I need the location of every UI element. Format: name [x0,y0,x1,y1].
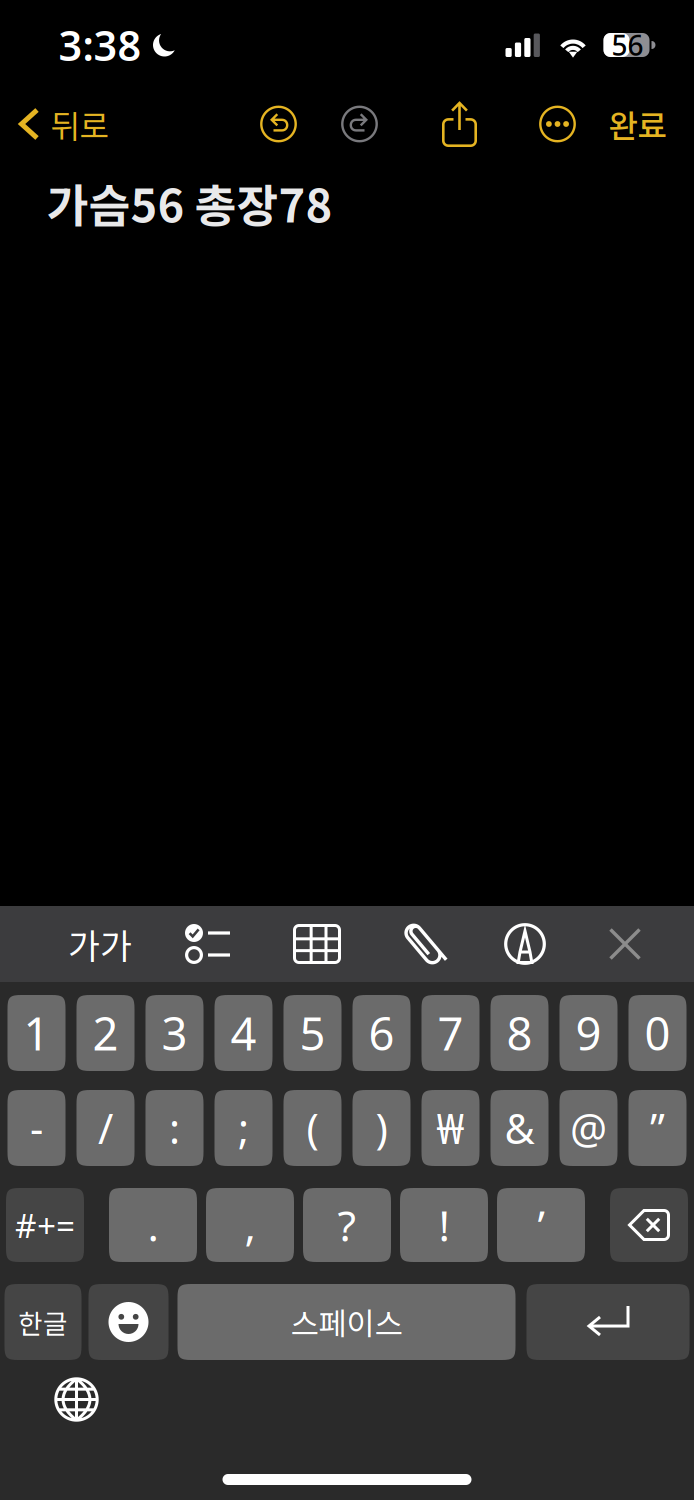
staticText: 6 [368,1003,394,1063]
button[interactable]: : [145,1090,203,1166]
button[interactable]: ₩ [421,1090,479,1166]
button[interactable]: Share [428,90,490,158]
button[interactable]: Undo [247,90,309,158]
button[interactable]: Next keyboard [45,1368,108,1431]
staticText: ’ [537,1197,544,1253]
button[interactable]: 한글 [4,1284,81,1360]
button[interactable]: 8 [490,995,548,1071]
button[interactable]: Emoji [88,1284,168,1360]
button[interactable]: Checklist [153,906,263,982]
button[interactable]: 7 [421,995,479,1071]
button[interactable]: 6 [352,995,410,1071]
button[interactable]: ? [303,1188,391,1262]
staticText: 완료 [608,101,666,147]
button[interactable]: #+= [6,1188,84,1262]
staticText: & [504,1101,534,1155]
button[interactable]: 1 [7,995,65,1071]
button[interactable]: Return [526,1284,689,1360]
staticText: 가가 [68,919,132,969]
button[interactable]: - [7,1090,65,1166]
staticText: : [169,1101,180,1155]
button[interactable]: 9 [559,995,617,1071]
button[interactable]: 0 [628,995,686,1071]
button[interactable]: Redo [328,90,390,158]
staticText: 가슴56 총장78 [46,170,332,236]
button[interactable]: @ [559,1090,617,1166]
button[interactable]: More options [526,90,588,158]
staticText: 한글 [18,1303,68,1341]
button[interactable]: / [76,1090,134,1166]
button[interactable]: 스페이스 [177,1284,515,1360]
button[interactable]: ; [214,1090,272,1166]
button[interactable]: Markup [475,906,575,982]
staticText: ; [238,1101,249,1155]
staticText: 7 [437,1003,463,1063]
staticText: ! [438,1197,449,1253]
button[interactable]: ” [628,1090,686,1166]
staticText: 뒤로 [50,101,108,147]
button[interactable]: , [206,1188,294,1262]
staticText: 2 [92,1003,118,1063]
button[interactable]: 2 [76,995,134,1071]
staticText: 3:38 [58,18,141,72]
staticText: 4 [230,1003,256,1063]
staticText: - [30,1101,43,1155]
staticText: ” [650,1101,665,1155]
button[interactable]: & [490,1090,548,1166]
button[interactable]: Hide keyboard [575,906,675,982]
staticText: 56 [611,26,643,64]
button[interactable]: 뒤로 [0,90,120,158]
staticText: ? [337,1197,356,1253]
button[interactable]: ( [283,1090,341,1166]
staticText: 9 [575,1003,601,1063]
button[interactable]: ! [400,1188,488,1262]
staticText: ( [306,1101,318,1155]
staticText: 0 [644,1003,670,1063]
staticText: . [147,1197,158,1253]
button[interactable]: 완료 [596,90,694,158]
staticText: 1 [23,1003,49,1063]
button[interactable]: 4 [214,995,272,1071]
button[interactable]: Table [263,906,371,982]
staticText: ₩ [436,1101,464,1155]
button[interactable]: ) [352,1090,410,1166]
staticText: 스페이스 [290,1300,402,1344]
staticText: #+= [15,1203,75,1247]
button[interactable]: ’ [497,1188,585,1262]
staticText: 8 [506,1003,532,1063]
button[interactable]: . [109,1188,197,1262]
staticText: / [98,1101,113,1155]
button[interactable]: 5 [283,995,341,1071]
staticText: , [244,1197,255,1253]
staticText: ) [375,1101,387,1155]
button[interactable]: 3 [145,995,203,1071]
button[interactable]: Attach file [371,906,475,982]
button[interactable]: Delete [610,1188,688,1262]
button[interactable]: 가가 [47,906,153,982]
staticText: 3 [161,1003,187,1063]
staticText: @ [570,1101,607,1155]
staticText: 5 [299,1003,325,1063]
